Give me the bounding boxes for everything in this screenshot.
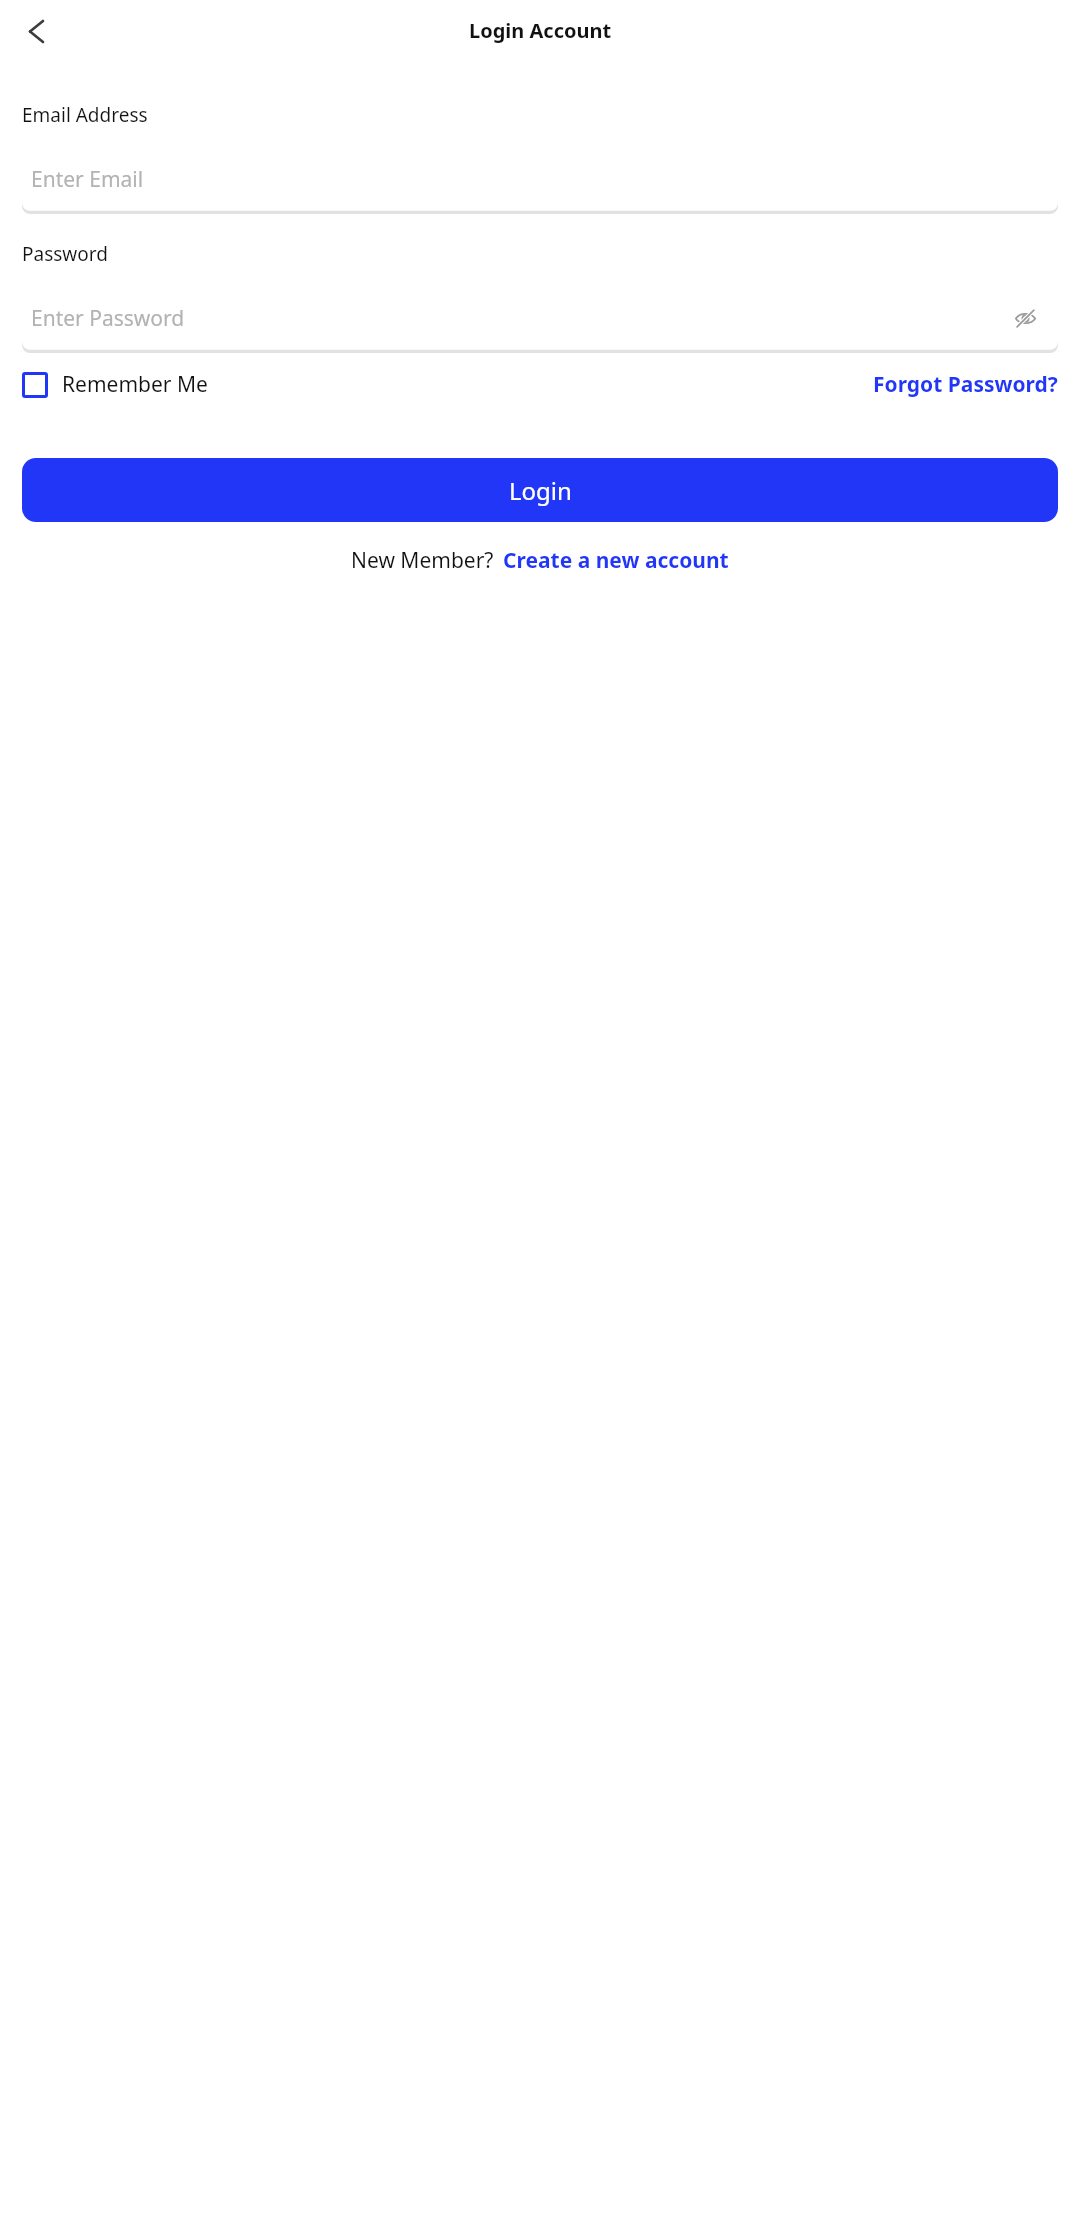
button[interactable]: Create a new account — [503, 546, 729, 575]
staticText: Password — [22, 241, 108, 267]
button[interactable]: Enter Password — [22, 283, 1058, 353]
button[interactable]: Forgot Password? — [873, 370, 1058, 399]
staticText: Forgot Password? — [873, 370, 1058, 399]
staticText: Login — [509, 474, 572, 507]
staticText: Create a new account — [503, 546, 729, 575]
staticText: Login Account — [469, 17, 612, 44]
staticText: Enter Password — [31, 304, 1009, 333]
button[interactable]: Remember Me — [22, 370, 208, 399]
staticText: New Member? — [351, 546, 494, 575]
button[interactable]: Login — [22, 458, 1058, 522]
button[interactable]: Toggle password visibility — [1009, 302, 1041, 334]
button[interactable]: Enter Email — [22, 144, 1058, 214]
staticText: Remember Me — [62, 370, 208, 399]
button[interactable]: Back — [14, 9, 58, 53]
staticText: Email Address — [22, 102, 148, 128]
staticText: Enter Email — [31, 165, 1041, 194]
